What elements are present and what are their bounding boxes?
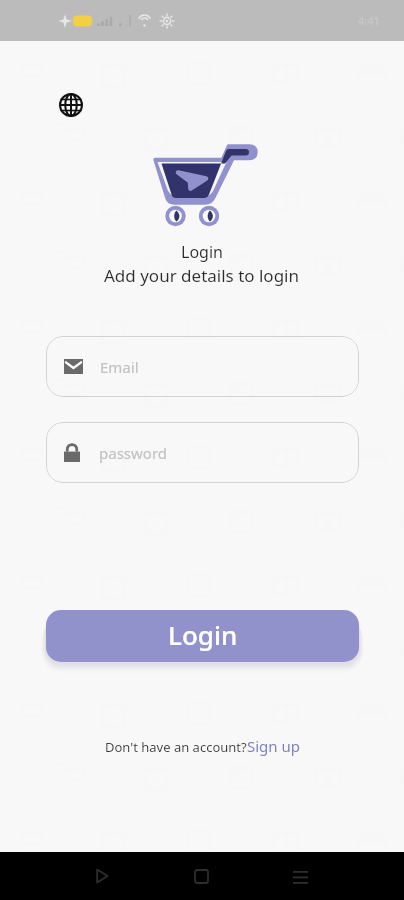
button[interactable]: Email <box>46 336 359 397</box>
staticText: Add your details to login <box>104 264 300 287</box>
button[interactable]: Home <box>177 852 225 900</box>
staticText: Login <box>181 241 223 263</box>
button[interactable]: password <box>46 422 359 483</box>
staticText: Login <box>168 617 238 652</box>
button[interactable]: Back <box>78 852 126 900</box>
staticText: Email <box>100 357 139 377</box>
button[interactable]: Recents <box>276 852 324 900</box>
button[interactable]: Sign up <box>247 736 300 756</box>
button[interactable]: Login <box>46 610 359 662</box>
button[interactable]: Language <box>56 90 86 120</box>
staticText: Don't have an account? <box>105 738 247 756</box>
staticText: password <box>99 443 167 463</box>
staticText: Sign up <box>247 736 300 756</box>
staticText: 4:41 <box>358 13 380 28</box>
